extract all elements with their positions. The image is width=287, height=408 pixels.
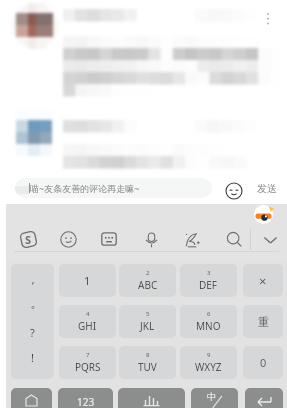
- staticText: JKL: [140, 319, 155, 333]
- staticText: 8: [146, 351, 150, 359]
- button[interactable]: Punctuation: [11, 264, 54, 379]
- button[interactable]: Emoji panel: [58, 229, 78, 249]
- staticText: 0: [260, 355, 267, 370]
- staticText: !: [31, 350, 34, 365]
- staticText: 123: [77, 395, 95, 408]
- button[interactable]: 喵~友条友善的评论再走嘛~: [15, 178, 212, 198]
- button[interactable]: 3: [180, 264, 237, 297]
- staticText: 6: [207, 310, 211, 318]
- staticText: 中: [207, 391, 216, 402]
- staticText: WXYZ: [195, 360, 222, 374]
- staticText: 2: [146, 269, 150, 277]
- staticText: DEF: [199, 278, 218, 292]
- staticText: 重: [258, 315, 269, 329]
- button[interactable]: Enter: [245, 388, 283, 408]
- button[interactable]: 123: [58, 388, 113, 408]
- button[interactable]: 0: [243, 346, 283, 379]
- button[interactable]: 4: [59, 305, 116, 338]
- button[interactable]: Handwriting: [182, 229, 202, 249]
- button[interactable]: 2: [119, 264, 176, 297]
- button[interactable]: Search: [224, 229, 244, 249]
- button[interactable]: More options: [260, 10, 276, 26]
- staticText: 7: [86, 351, 90, 359]
- staticText: ×: [259, 272, 267, 290]
- staticText: 3: [207, 269, 211, 277]
- button[interactable]: 重: [243, 305, 283, 338]
- staticText: ABC: [138, 278, 158, 292]
- button[interactable]: 9: [180, 346, 237, 379]
- staticText: 1: [84, 273, 91, 288]
- button[interactable]: Assistant: [253, 204, 274, 225]
- button[interactable]: Emoji: [225, 182, 243, 200]
- button[interactable]: Switch language: [191, 388, 238, 408]
- button[interactable]: Voice: [118, 388, 185, 408]
- button[interactable]: 5: [119, 305, 176, 338]
- staticText: 喵~友条友善的评论再走嘛~: [30, 182, 140, 194]
- button[interactable]: Home: [11, 388, 52, 408]
- button[interactable]: Backspace: [243, 264, 283, 297]
- staticText: GHI: [78, 319, 97, 333]
- button[interactable]: Voice input: [141, 229, 161, 249]
- staticText: 4: [86, 310, 90, 318]
- button[interactable]: 8: [119, 346, 176, 379]
- button[interactable]: Hide keyboard: [260, 229, 280, 249]
- button[interactable]: 1: [59, 264, 116, 297]
- staticText: ?: [30, 325, 35, 340]
- button[interactable]: Keyboard layout: [99, 229, 119, 249]
- staticText: °: [31, 303, 35, 315]
- staticText: S: [25, 232, 32, 247]
- staticText: 发送: [257, 182, 277, 195]
- button[interactable]: Sogou input: [18, 229, 38, 249]
- staticText: MNO: [196, 319, 221, 333]
- staticText: 9: [207, 351, 211, 359]
- button[interactable]: 7: [59, 346, 116, 379]
- button[interactable]: 6: [180, 305, 237, 338]
- staticText: TUV: [138, 360, 157, 374]
- staticText: 5: [146, 310, 150, 318]
- staticText: ’: [32, 278, 34, 293]
- staticText: PQRS: [75, 360, 101, 374]
- button[interactable]: 发送: [253, 180, 281, 196]
